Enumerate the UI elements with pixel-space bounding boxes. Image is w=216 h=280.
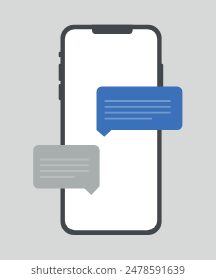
staticText: shutterstock.com · 2478591639 bbox=[31, 263, 186, 277]
